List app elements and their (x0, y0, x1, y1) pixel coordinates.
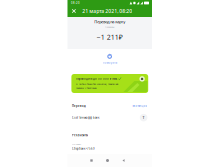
staticText: −1 211₽ (97, 32, 123, 42)
button[interactable]: повторить (67, 52, 152, 66)
staticText: квитанция (132, 104, 147, 108)
staticText: 21 марта 2021, 08:20 (82, 7, 132, 14)
staticText: Переводите до 50 000 ₽/мес (76, 77, 117, 80)
staticText: В любые банки без комиссии, подключив (76, 82, 118, 85)
staticText: На карту (72, 142, 81, 146)
button[interactable]: Home (99, 154, 115, 167)
staticText: Переводы (105, 25, 115, 28)
button[interactable]: Close (70, 7, 78, 15)
staticText: 08:20 (71, 1, 80, 5)
button[interactable]: Back (115, 154, 131, 167)
staticText: Реквизиты (72, 133, 88, 137)
button[interactable]: квитанция (132, 104, 147, 108)
button[interactable]: Recent apps (83, 154, 99, 167)
button[interactable]: Переводите до 50 000 ₽/мес (71, 74, 148, 93)
staticText: Т (143, 115, 145, 120)
staticText: повторить (103, 61, 117, 64)
staticText: Перевод на карту (94, 19, 125, 24)
staticText: Сбербанк •7569 (72, 147, 95, 150)
staticText: Счет Тинькофф Банк (72, 116, 99, 119)
staticText: Перевод (72, 104, 86, 108)
staticText: подписку СберПрайм (76, 86, 97, 90)
